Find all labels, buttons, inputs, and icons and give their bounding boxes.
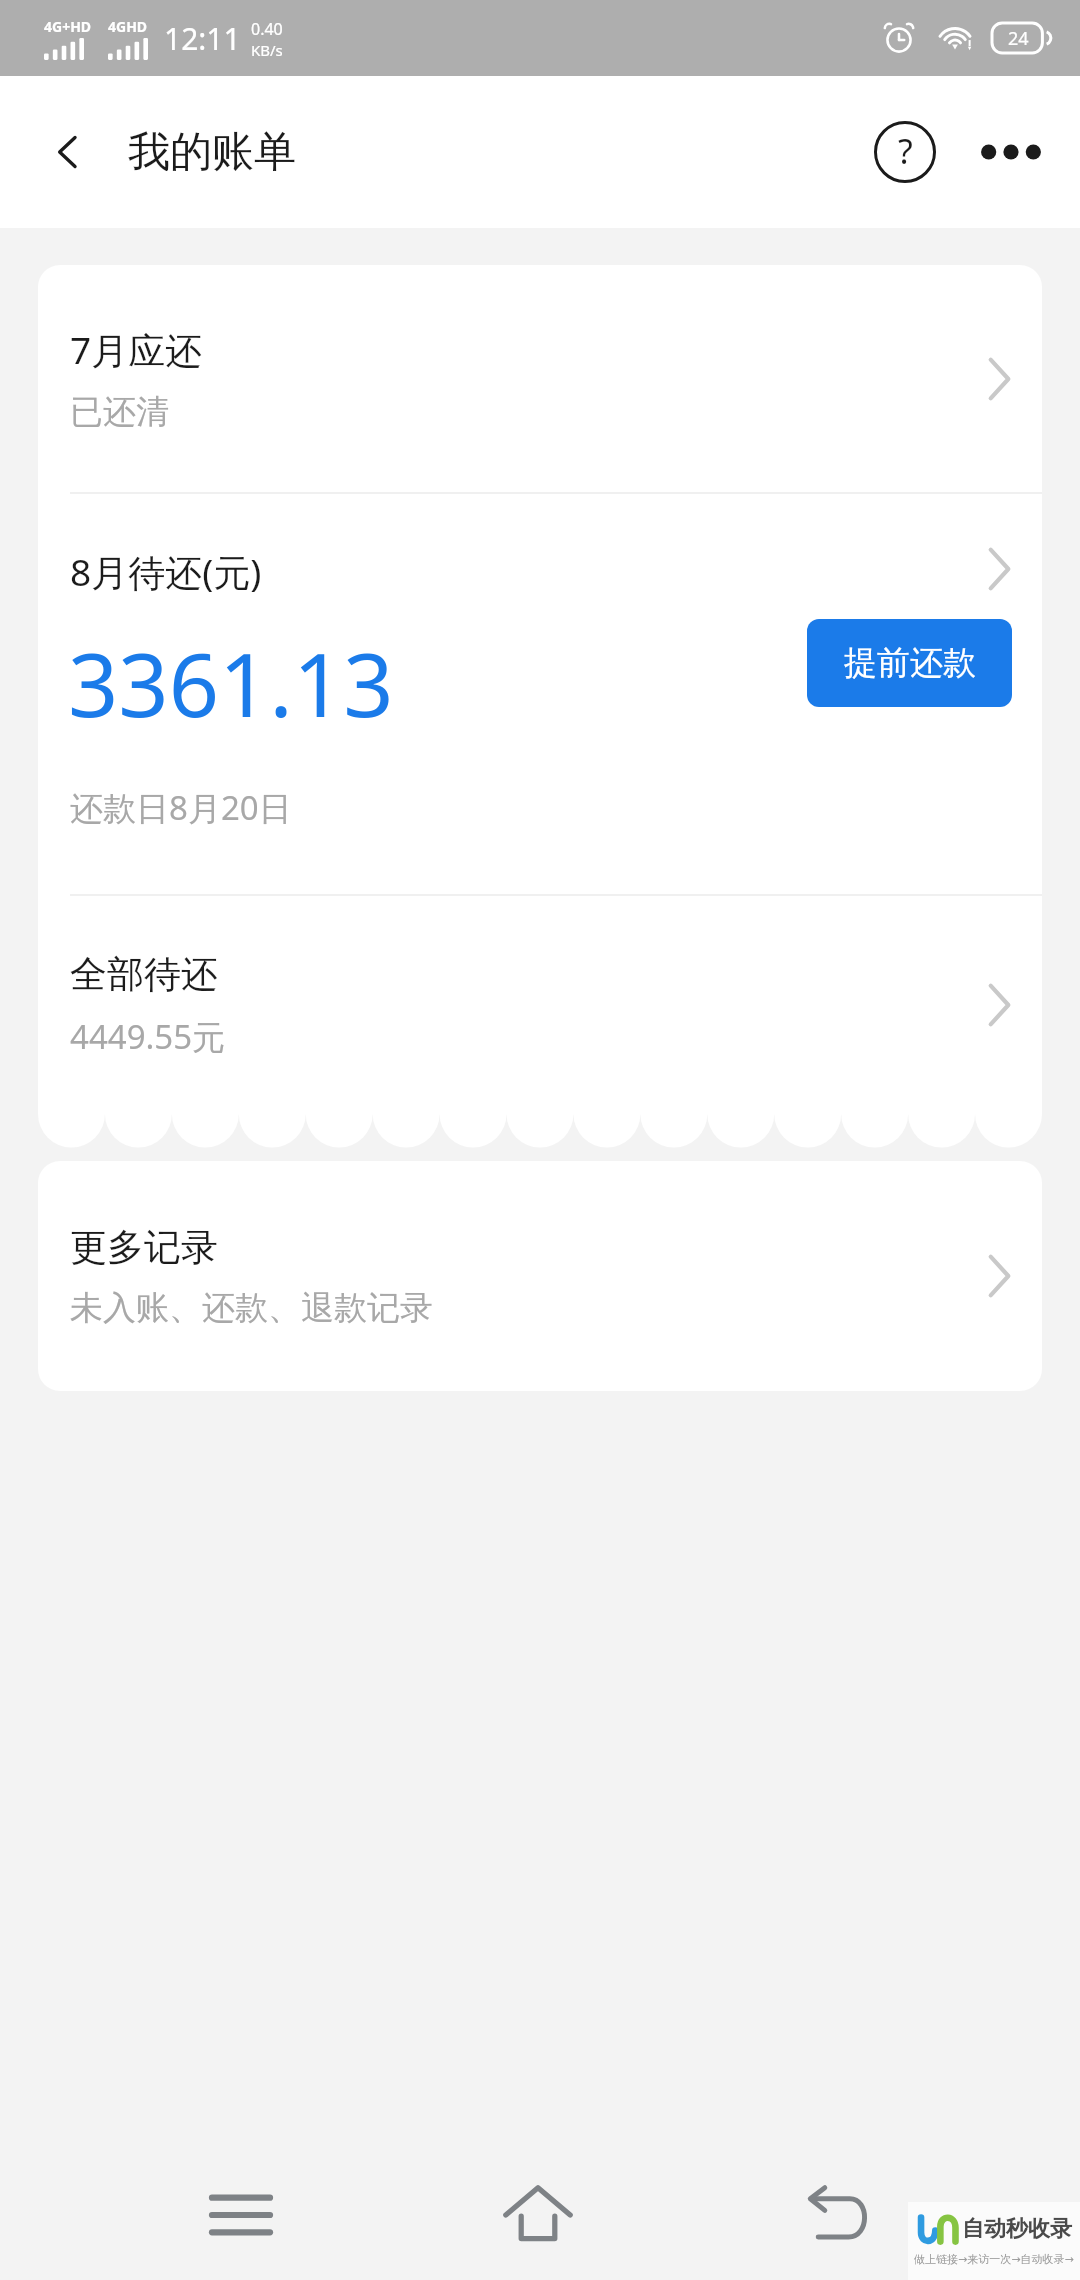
staticText: 0.40 — [251, 18, 283, 40]
staticText: 未入账、还款、退款记录 — [70, 1287, 433, 1329]
staticText: 更多记录 — [70, 1224, 218, 1271]
staticText: KB/s — [251, 40, 283, 60]
button[interactable]: Home — [481, 2162, 595, 2268]
button[interactable]: Back — [34, 120, 102, 184]
staticText: 全部待还 — [70, 951, 218, 998]
button[interactable]: 更多记录 — [38, 1161, 1042, 1391]
staticText: 自动秒收录 — [962, 2215, 1072, 2243]
staticText: 4GHD — [108, 17, 148, 36]
button[interactable]: 7月应还 — [38, 265, 1042, 492]
staticText: 4G+HD — [44, 17, 92, 36]
staticText: 做上链接→来访一次→自动收录→ — [914, 2252, 1074, 2266]
staticText: 3361.13 — [68, 623, 394, 743]
button[interactable]: Back — [783, 2164, 893, 2266]
button[interactable]: 全部待还 — [38, 896, 1042, 1114]
staticText: 已还清 — [70, 391, 169, 433]
button[interactable]: Help — [864, 111, 946, 193]
staticText: ? — [898, 128, 913, 174]
staticText: 我的账单 — [128, 126, 296, 179]
staticText: 12:11 — [164, 18, 241, 59]
button[interactable]: 8月待还(元) — [38, 494, 1042, 894]
staticText: 8月待还(元) — [70, 546, 262, 597]
button[interactable]: 提前还款 — [807, 619, 1012, 707]
staticText: 24 — [1008, 26, 1029, 51]
staticText: 7月应还 — [70, 324, 203, 375]
staticText: 还款日8月20日 — [70, 785, 292, 830]
button[interactable]: Recent apps — [188, 2167, 294, 2263]
staticText: 提前还款 — [844, 642, 976, 684]
staticText: 4449.55元 — [70, 1014, 226, 1059]
button[interactable]: More options — [968, 130, 1054, 174]
